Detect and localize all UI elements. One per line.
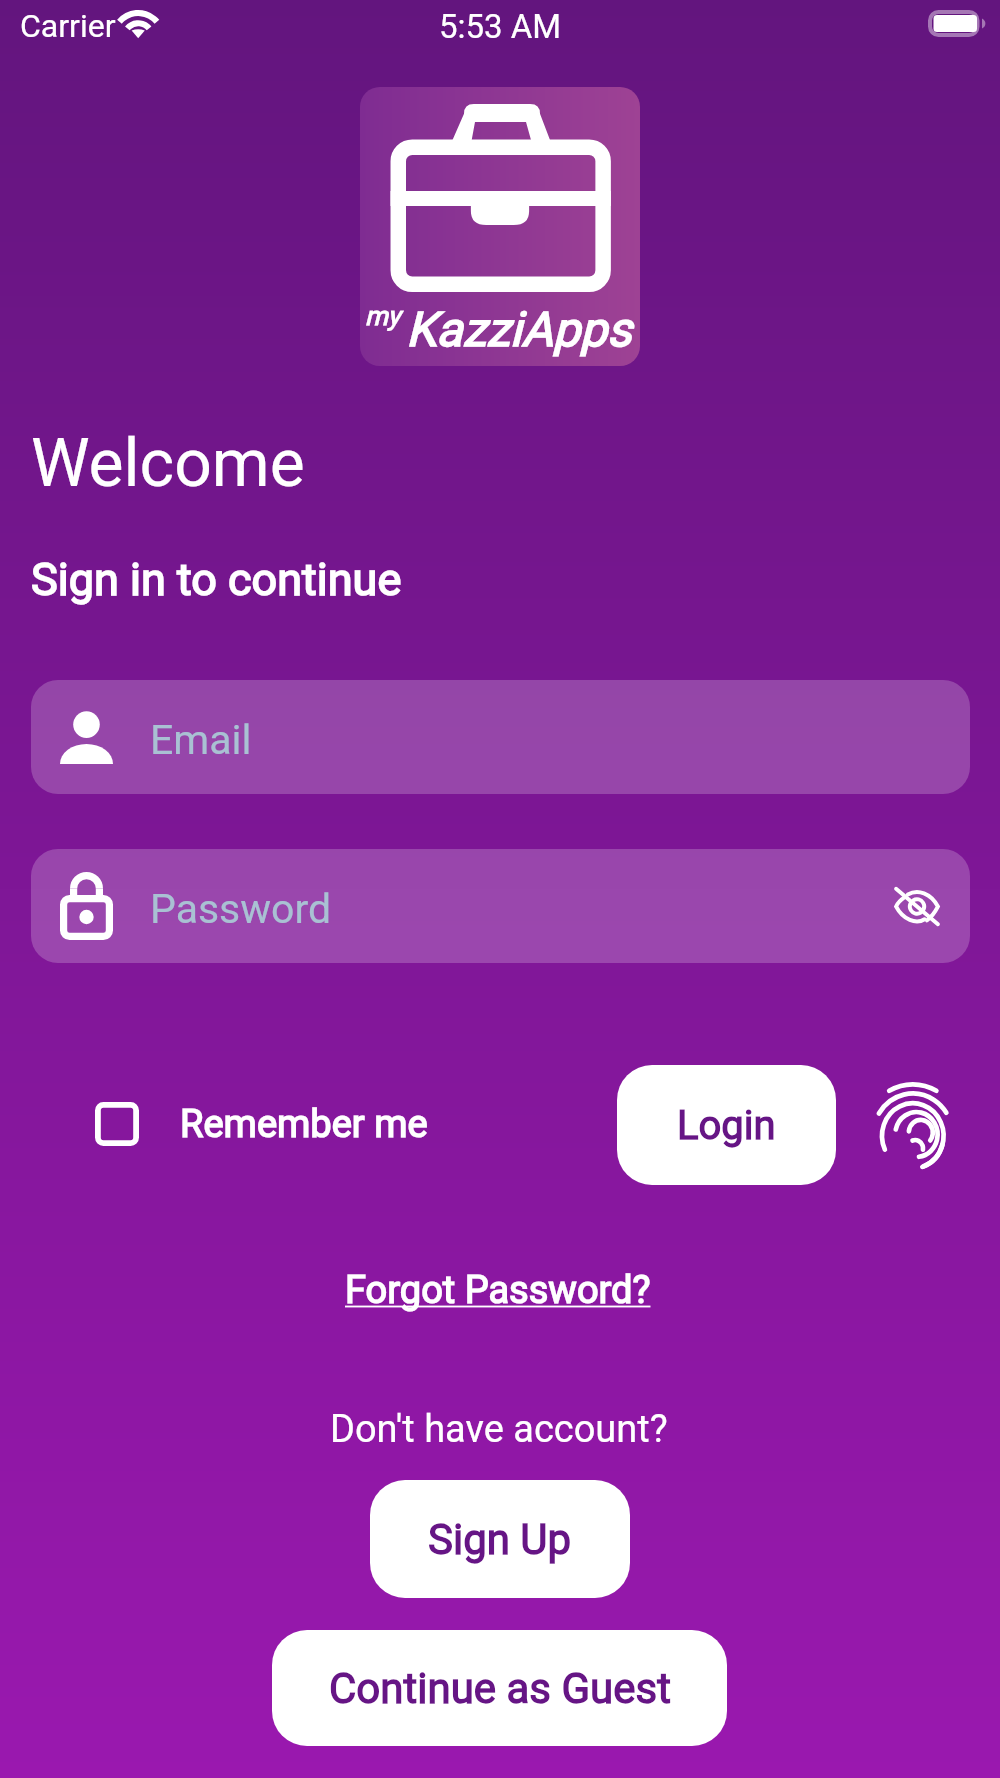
staticText: Sign in to continue	[31, 553, 402, 606]
button[interactable]: Remember me	[95, 1096, 428, 1152]
staticText: Login	[677, 1102, 776, 1149]
staticText: Remember me	[180, 1102, 428, 1147]
button[interactable]: Continue as Guest	[272, 1630, 727, 1746]
staticText: Welcome	[31, 425, 305, 502]
button[interactable]: Login	[617, 1065, 836, 1185]
staticText: Carrier	[20, 7, 116, 45]
staticText: Don't have account?	[330, 1407, 668, 1452]
staticText: my	[365, 301, 401, 331]
button[interactable]: Email	[31, 680, 970, 794]
button[interactable]: Forgot Password?	[345, 1268, 651, 1313]
staticText: 5:53 AM	[439, 7, 562, 46]
button[interactable]: Show password	[879, 868, 955, 944]
button[interactable]: Sign Up	[370, 1480, 630, 1598]
staticText: KazziApps	[406, 301, 632, 357]
staticText: Email	[150, 716, 252, 764]
staticText: Forgot Password?	[345, 1268, 651, 1313]
staticText: Sign Up	[428, 1515, 572, 1564]
button[interactable]: Password	[31, 849, 970, 963]
button[interactable]: Fingerprint login	[868, 1074, 956, 1172]
staticText: Continue as Guest	[329, 1664, 671, 1713]
staticText: Password	[150, 885, 332, 933]
